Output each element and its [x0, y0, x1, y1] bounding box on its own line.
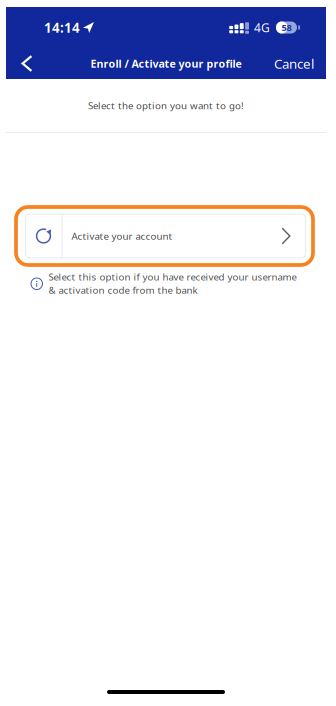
staticText: Select the option you want to go! [88, 99, 244, 112]
staticText: 58 [281, 21, 291, 34]
staticText: 14:14 [44, 18, 80, 37]
button[interactable]: Activate your account [6, 205, 326, 267]
staticText: Select this option if you have received … [48, 270, 296, 296]
staticText: Enroll / Activate your profile [90, 56, 241, 71]
staticText: Activate your account [71, 229, 172, 243]
button[interactable]: Back [11, 47, 43, 79]
button[interactable]: Cancel [268, 47, 320, 79]
staticText: Cancel [274, 54, 314, 73]
staticText: 4G [254, 19, 270, 36]
